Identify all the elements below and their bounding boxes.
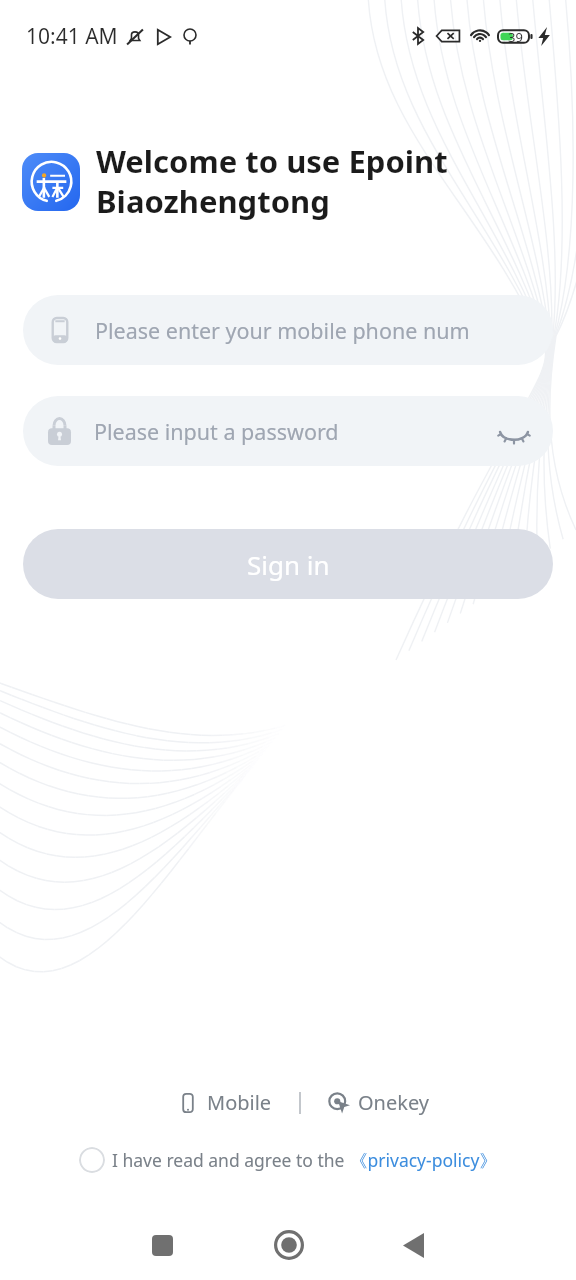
staticText: 10:41 AM xyxy=(26,22,118,51)
button[interactable]: Sign in xyxy=(23,529,553,599)
staticText: Sign in xyxy=(247,547,330,582)
button[interactable]: 《privacy-policy》 xyxy=(350,1148,497,1172)
button[interactable]: Mobile xyxy=(178,1085,272,1120)
staticText: Welcome to use Epoint Biaozhengtong xyxy=(96,140,566,222)
button[interactable]: Home xyxy=(257,1213,321,1277)
button[interactable]: Please input a password xyxy=(23,396,553,466)
staticText: I have read and agree to the xyxy=(112,1148,350,1172)
staticText: 39 xyxy=(508,28,523,46)
button[interactable]: Toggle password visibility xyxy=(497,414,531,448)
button[interactable]: Agree to privacy policy xyxy=(79,1147,105,1173)
staticText: Please input a password xyxy=(94,417,339,446)
button[interactable]: Back xyxy=(381,1213,445,1277)
staticText: Mobile xyxy=(207,1089,272,1116)
staticText: Please enter your mobile phone num xyxy=(95,316,470,345)
button[interactable]: Please enter your mobile phone num xyxy=(23,295,553,365)
button[interactable]: Recent apps xyxy=(130,1213,194,1277)
button[interactable]: Onekey xyxy=(328,1085,430,1120)
staticText: Onekey xyxy=(358,1089,430,1116)
